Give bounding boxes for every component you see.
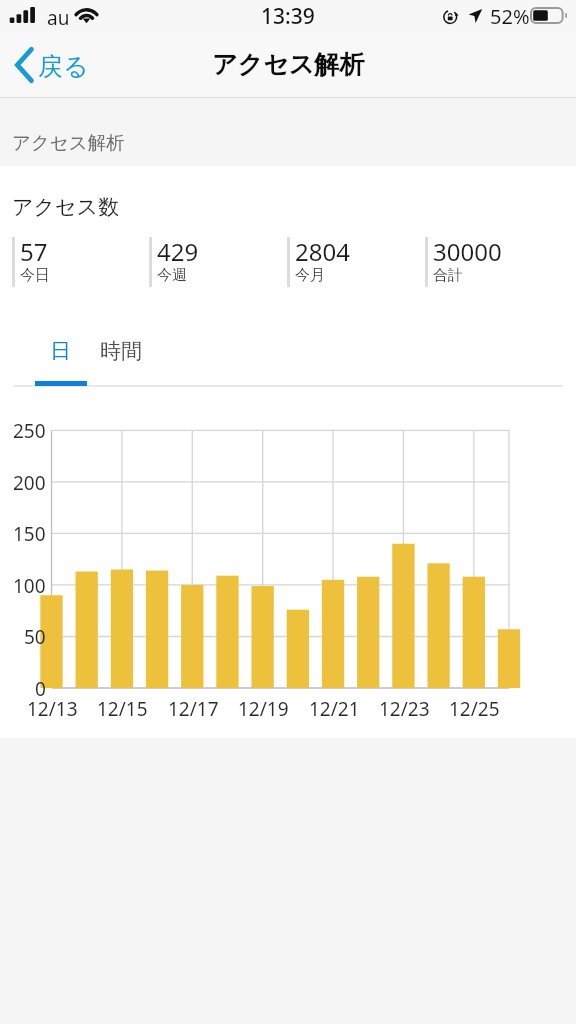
staticText: 57 [20,235,48,268]
staticText: au [47,5,70,31]
staticText: 今日 [20,266,50,283]
staticText: 429 [157,235,199,268]
staticText: アクセス解析 [212,49,365,80]
staticText: 日 [50,338,71,364]
staticText: 50 [24,624,46,647]
staticText: 200 [13,470,46,493]
staticText: 250 [13,418,46,441]
staticText: 12/23 [379,696,430,719]
staticText: 時間 [100,338,142,364]
staticText: 12/21 [309,696,360,719]
button[interactable]: 時間 [92,334,150,384]
staticText: 150 [13,521,46,544]
button[interactable]: 日 [34,334,86,384]
staticText: 今月 [295,266,325,283]
staticText: 今週 [157,266,187,283]
staticText: 100 [13,573,46,596]
staticText: 合計 [433,266,463,283]
staticText: 12/19 [238,696,289,719]
staticText: 戻る [38,51,89,82]
staticText: 12/15 [97,696,148,719]
staticText: 12/25 [449,696,500,719]
staticText: 52% [490,3,530,30]
staticText: 12/17 [168,696,219,719]
staticText: アクセス解析 [12,131,125,154]
staticText: 2804 [295,235,350,268]
staticText: 13:39 [261,2,315,31]
button[interactable]: 戻る [0,39,103,91]
staticText: 12/13 [27,696,78,719]
staticText: 30000 [433,235,502,268]
staticText: 0 [35,676,46,699]
staticText: アクセス数 [12,194,119,220]
